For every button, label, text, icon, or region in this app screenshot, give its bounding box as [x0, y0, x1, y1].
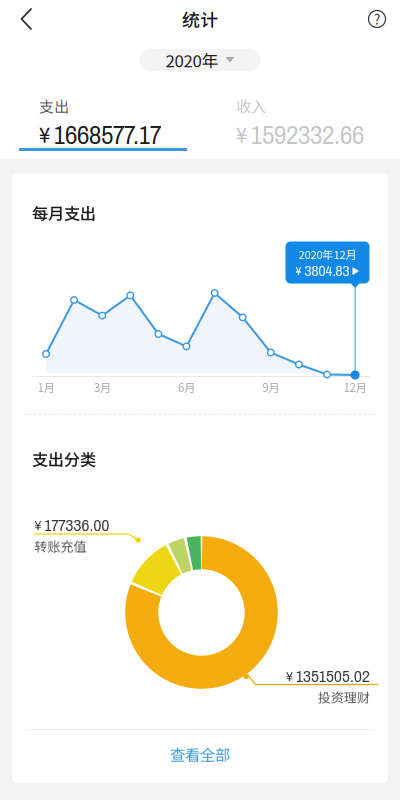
staticText: ¥ — [34, 518, 41, 533]
button[interactable]: 支出 — [0, 95, 200, 147]
staticText: 投资理财 — [318, 687, 370, 706]
staticText: 2020年 — [165, 48, 218, 72]
button[interactable]: 2020年 — [139, 49, 261, 71]
button[interactable]: 查看全部 — [140, 737, 260, 771]
button[interactable]: Help — [354, 0, 400, 38]
staticText: 1668577.17 — [54, 122, 162, 149]
staticText: 1月 — [37, 379, 54, 395]
staticText: 177336.00 — [44, 517, 109, 534]
staticText: 支出分类 — [32, 447, 96, 471]
staticText: ? — [374, 9, 380, 29]
staticText: ¥ — [295, 265, 301, 277]
staticText: 9月 — [262, 379, 279, 395]
staticText: 收入 — [236, 95, 266, 117]
staticText: 查看全部 — [170, 743, 230, 765]
staticText: 每月支出 — [32, 201, 96, 225]
staticText: 2020年12月 — [298, 246, 356, 262]
staticText: 1351505.02 — [296, 668, 370, 685]
staticText: 12月 — [344, 379, 367, 395]
staticText: 3月 — [94, 379, 111, 395]
staticText: ¥ — [286, 669, 293, 684]
staticText: 支出 — [39, 95, 69, 117]
staticText: 1592332.66 — [251, 122, 364, 149]
staticText: ¥ — [39, 124, 50, 147]
staticText: 转账充值 — [34, 536, 86, 555]
staticText: 3804.83 — [304, 263, 349, 279]
staticText: ¥ — [236, 124, 247, 147]
button[interactable]: 收入 — [200, 95, 400, 147]
staticText: 统计 — [182, 6, 218, 32]
button[interactable]: Back — [0, 0, 54, 38]
staticText: 6月 — [178, 379, 195, 395]
